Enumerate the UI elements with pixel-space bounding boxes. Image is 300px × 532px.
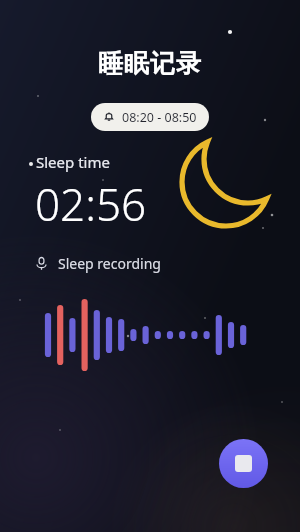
button[interactable]: Sleep recording <box>34 254 161 273</box>
button[interactable]: Stop recording <box>219 439 268 488</box>
staticText: 08:20 - 08:50 <box>122 109 197 126</box>
staticText: 睡眠记录 <box>0 48 300 79</box>
staticText: Sleep time <box>36 152 110 172</box>
button[interactable]: 08:20 - 08:50 <box>91 103 209 131</box>
staticText: Sleep recording <box>58 254 161 273</box>
staticText: 02:56 <box>35 174 147 234</box>
